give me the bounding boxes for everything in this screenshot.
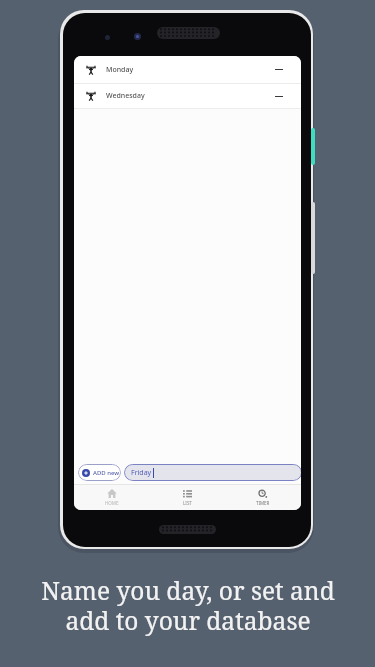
staticText: TIMER xyxy=(256,500,270,506)
staticText: ADD new xyxy=(93,469,120,477)
button[interactable]: Friday xyxy=(124,464,301,481)
button[interactable]: TIMER xyxy=(225,489,301,506)
button[interactable]: Wednesday xyxy=(74,84,301,108)
button[interactable]: HOME xyxy=(74,489,149,506)
staticText: HOME xyxy=(105,500,119,506)
staticText: Wednesday xyxy=(106,91,145,101)
staticText: Monday xyxy=(106,65,134,75)
button[interactable]: LIST xyxy=(149,490,225,506)
staticText: Friday xyxy=(131,468,152,478)
staticText: Name you day, or set and add to your dat… xyxy=(41,574,335,637)
staticText: LIST xyxy=(183,500,192,506)
button[interactable]: ADD new xyxy=(78,464,121,481)
button[interactable]: Monday xyxy=(74,56,301,83)
